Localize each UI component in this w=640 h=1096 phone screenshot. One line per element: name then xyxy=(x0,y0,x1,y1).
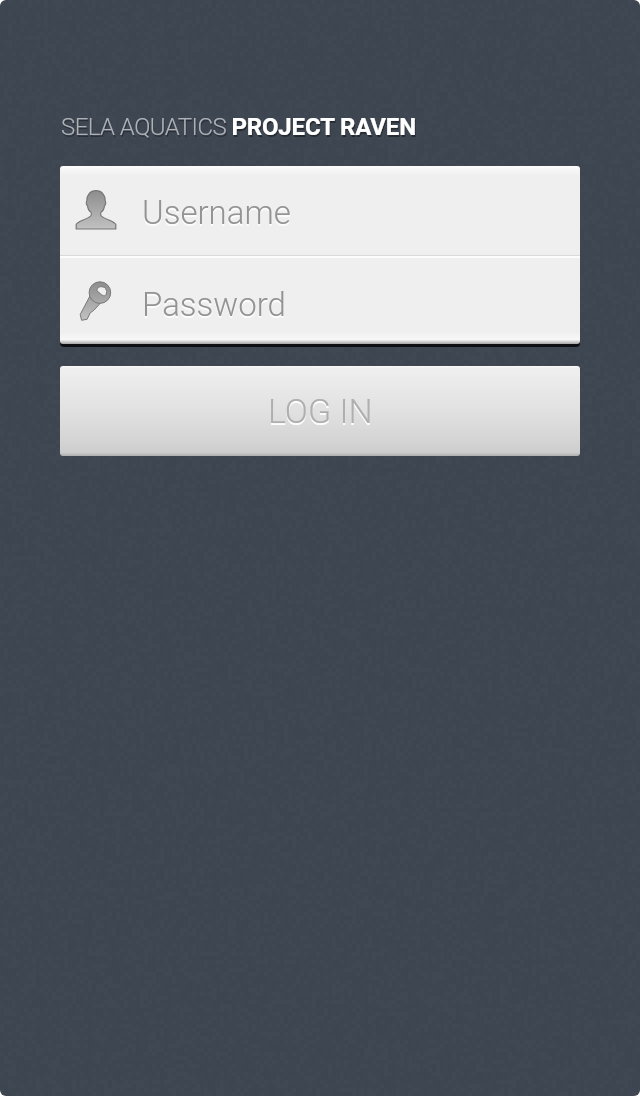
staticText: SELA AQUATICS PROJECT RAVEN xyxy=(61,113,416,141)
staticText: Username xyxy=(142,195,291,234)
staticText: LOG IN xyxy=(268,393,373,433)
button[interactable]: LOG IN xyxy=(60,366,580,456)
other: Username xyxy=(76,191,116,229)
other: Password xyxy=(80,283,111,320)
staticText: Password xyxy=(142,285,286,324)
button[interactable]: Username xyxy=(60,166,580,255)
staticText: Username xyxy=(142,193,291,232)
staticText: LOG IN xyxy=(268,391,373,431)
staticText: SELA AQUATICS PROJECT RAVEN xyxy=(62,115,417,143)
staticText: Password xyxy=(142,287,286,326)
button[interactable]: Password xyxy=(60,258,580,344)
